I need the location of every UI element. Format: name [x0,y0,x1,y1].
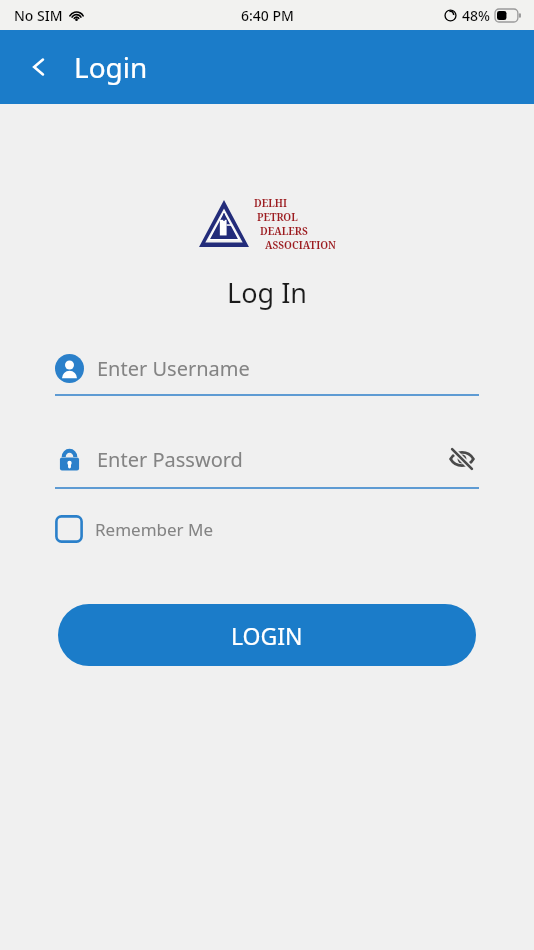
staticText: No SIM [14,6,63,25]
staticText: Login [74,48,148,86]
button[interactable]: Back [18,46,60,88]
staticText: 6:40 PM [241,6,294,25]
button[interactable]: Remember Me [55,515,534,543]
button[interactable]: LOGIN [58,604,476,666]
staticText: PETROL [257,210,298,224]
staticText: DELHI [254,196,287,210]
staticText: Log In [0,274,534,311]
staticText: 48% [462,6,490,25]
staticText: Remember Me [95,518,214,541]
staticText: Enter Username [97,355,479,382]
staticText: LOGIN [231,620,303,651]
button[interactable]: Enter Username [55,354,479,396]
staticText: ASSOCIATION [265,238,336,252]
staticText: DEALERS [260,224,308,238]
staticText: Enter Password [97,446,445,473]
button[interactable]: Show password [445,442,479,476]
button[interactable]: Enter Password [55,442,479,489]
